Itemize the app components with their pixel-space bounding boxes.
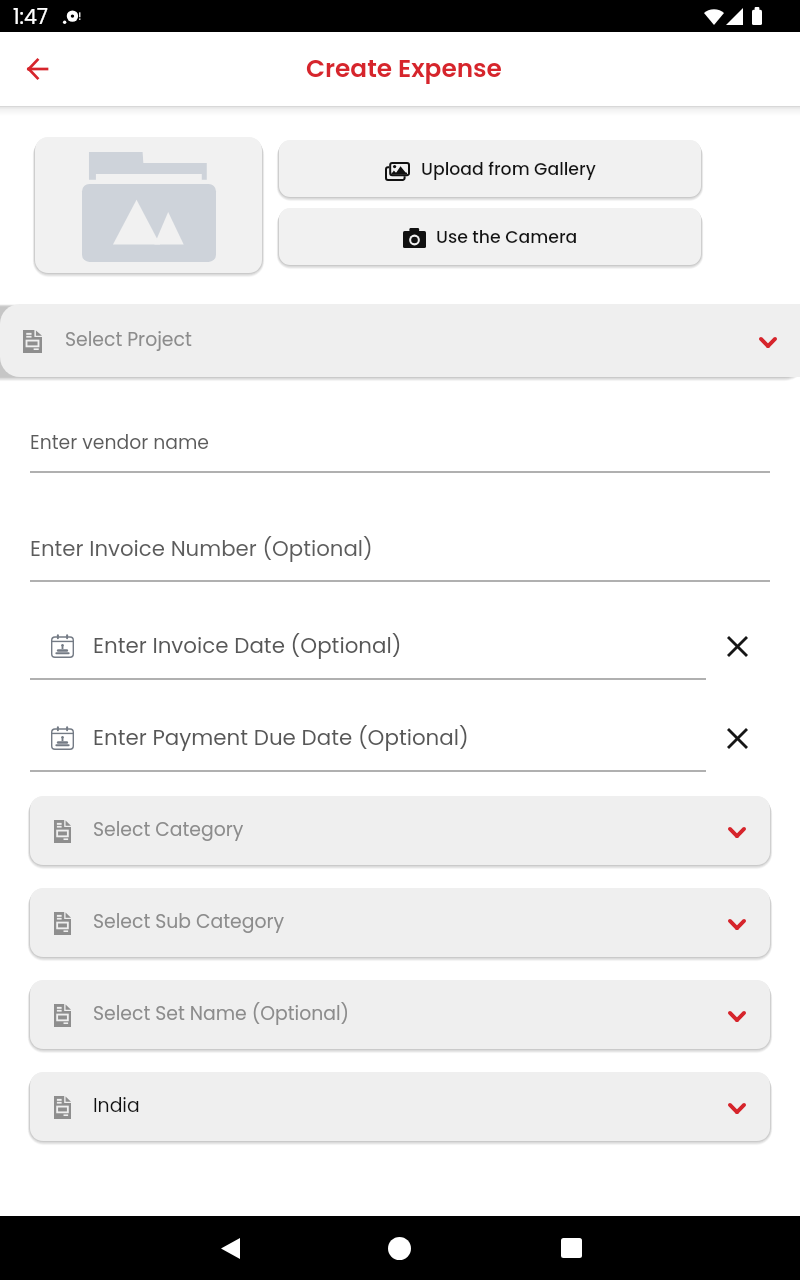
button[interactable]: Select Category	[30, 796, 770, 865]
button[interactable]: Select Project	[0, 304, 800, 377]
button[interactable]: Recents	[547, 1224, 595, 1272]
button[interactable]: Enter Invoice Date (Optional)	[30, 624, 706, 668]
staticText: Select Category	[93, 816, 244, 842]
staticText: Enter vendor name	[30, 429, 209, 455]
button[interactable]: Clear date	[711, 712, 763, 764]
button[interactable]: Receipt image	[35, 137, 262, 273]
staticText: Enter Invoice Date (Optional)	[93, 631, 402, 661]
staticText: India	[93, 1092, 140, 1118]
button[interactable]: Enter Payment Due Date (Optional)	[30, 716, 706, 760]
button[interactable]: Select Sub Category	[30, 888, 770, 957]
button[interactable]: Home	[375, 1224, 423, 1272]
button[interactable]: Select Set Name (Optional)	[30, 980, 770, 1049]
button[interactable]: Enter Invoice Number (Optional)	[30, 534, 770, 584]
staticText: 1:47	[13, 2, 49, 31]
staticText: Select Set Name (Optional)	[93, 1000, 350, 1026]
staticText: Upload from Gallery	[421, 157, 596, 181]
button[interactable]: Back	[13, 45, 61, 93]
staticText: Select Project	[65, 326, 192, 352]
button[interactable]: Upload from Gallery	[279, 140, 701, 197]
staticText: Enter Invoice Number (Optional)	[30, 534, 373, 564]
button[interactable]: India	[30, 1072, 770, 1141]
staticText: Select Sub Category	[93, 908, 285, 934]
button[interactable]: Clear date	[711, 620, 763, 672]
staticText: Enter Payment Due Date (Optional)	[93, 723, 469, 753]
button[interactable]: Enter vendor name	[30, 429, 770, 475]
button[interactable]: Use the Camera	[279, 208, 701, 265]
staticText: Use the Camera	[436, 225, 578, 249]
staticText: Create Expense	[306, 51, 502, 86]
button[interactable]: Back	[206, 1224, 254, 1272]
